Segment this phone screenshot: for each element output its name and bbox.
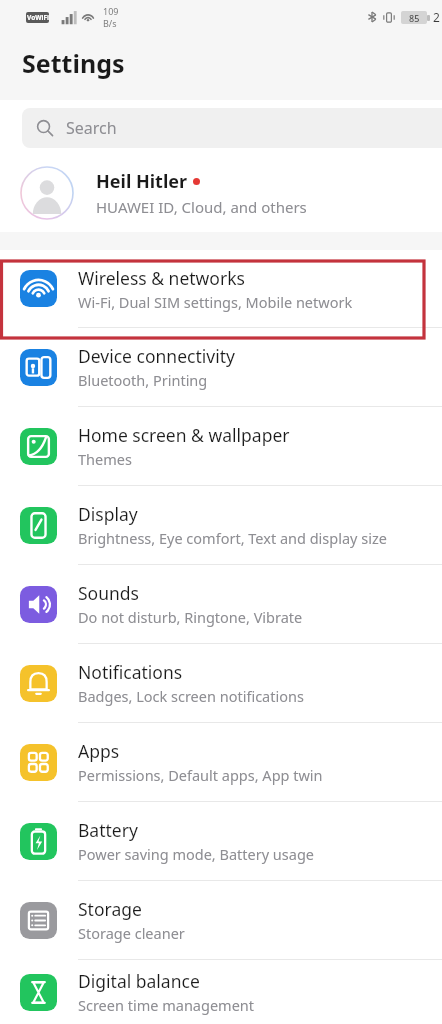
button[interactable]: Sounds (0, 565, 442, 643)
staticText: Permissions, Default apps, App twin (78, 765, 323, 785)
staticText: Do not disturb, Ringtone, Vibrate (78, 607, 303, 627)
staticText: Heil Hitler (96, 169, 188, 194)
staticText: Notifications (78, 660, 183, 684)
button[interactable]: Display (0, 486, 442, 564)
staticText: Themes (78, 449, 132, 469)
staticText: Wi-Fi, Dual SIM settings, Mobile network (78, 292, 353, 312)
staticText: Storage (78, 897, 142, 921)
staticText: 2 (433, 9, 440, 25)
button[interactable]: Battery (0, 802, 442, 880)
staticText: 85 (409, 12, 420, 24)
staticText: Digital balance (78, 969, 200, 993)
button[interactable]: Wireless & networks (0, 250, 442, 327)
staticText: Home screen & wallpaper (78, 423, 290, 447)
button[interactable]: Digital balance (0, 960, 442, 1024)
staticText: Wireless & networks (78, 266, 245, 290)
button[interactable]: Apps (0, 723, 442, 801)
staticText: Screen time management (78, 995, 254, 1015)
staticText: VoWiFi (27, 13, 49, 22)
staticText: Device connectivity (78, 344, 235, 368)
staticText: Settings (22, 46, 125, 80)
staticText: Apps (78, 739, 120, 763)
button[interactable]: Heil Hitler (0, 156, 442, 232)
button[interactable]: Device connectivity (0, 328, 442, 406)
staticText: Battery (78, 818, 138, 842)
staticText: Display (78, 502, 138, 526)
staticText: Sounds (78, 581, 139, 605)
staticText: 109 (103, 5, 119, 17)
staticText: Brightness, Eye comfort, Text and displa… (78, 528, 387, 548)
button[interactable]: Notifications (0, 644, 442, 722)
button[interactable]: Search (22, 108, 442, 148)
staticText: Power saving mode, Battery usage (78, 844, 315, 864)
button[interactable]: Storage (0, 881, 442, 959)
staticText: B/s (103, 17, 117, 29)
staticText: HUAWEI ID, Cloud, and others (96, 197, 307, 217)
staticText: Search (66, 117, 117, 139)
staticText: Badges, Lock screen notifications (78, 686, 304, 706)
staticText: Storage cleaner (78, 923, 185, 943)
button[interactable]: Home screen & wallpaper (0, 407, 442, 485)
staticText: Bluetooth, Printing (78, 370, 208, 390)
